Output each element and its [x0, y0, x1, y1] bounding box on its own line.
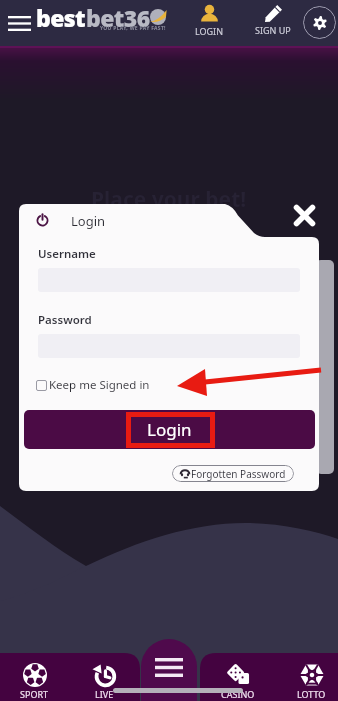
staticText: SPORT: [20, 688, 49, 700]
button[interactable]: Forgotten Password: [172, 465, 294, 482]
staticText: Place your bet!: [91, 185, 247, 214]
staticText: Keep me Signed in: [49, 377, 150, 393]
staticText: CASINO: [221, 688, 255, 700]
staticText: best: [36, 2, 86, 33]
button[interactable]: SIGN UP: [247, 0, 299, 46]
button[interactable]: LOTTO: [278, 659, 338, 701]
button[interactable]: Login: [24, 410, 315, 449]
staticText: LOGIN: [195, 25, 224, 37]
button[interactable]: LIVE: [71, 659, 137, 701]
button[interactable]: LOGIN: [186, 0, 232, 46]
button[interactable]: Open navigation menu: [0, 0, 38, 46]
button[interactable]: CASINO: [205, 659, 271, 701]
staticText: bet36: [86, 2, 150, 33]
button[interactable]: Menu: [141, 639, 197, 695]
staticText: Forgotten Password: [191, 467, 286, 481]
button[interactable]: Keep me Signed in: [36, 377, 150, 393]
staticText: LOTTO: [297, 688, 326, 700]
staticText: Password: [38, 312, 92, 328]
button[interactable]: Close: [288, 199, 320, 231]
staticText: YOU PLAY, WE PAY FAST!: [100, 25, 166, 32]
staticText: Login: [147, 418, 192, 441]
staticText: LIVE: [95, 688, 114, 700]
button[interactable]: SPORT: [1, 659, 67, 701]
staticText: SIGN UP: [255, 24, 291, 36]
staticText: Login: [71, 212, 106, 230]
staticText: Username: [38, 246, 96, 262]
button[interactable]: Settings: [303, 6, 336, 39]
